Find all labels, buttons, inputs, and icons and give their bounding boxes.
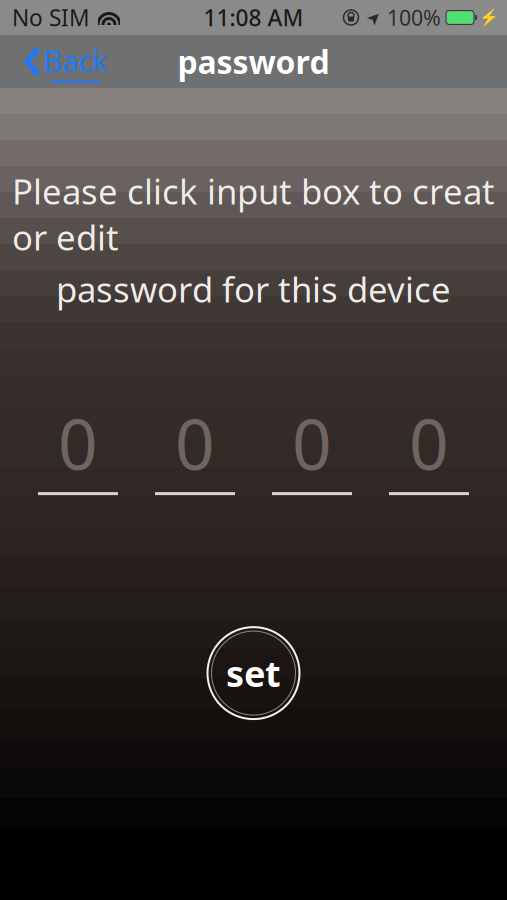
staticText: password — [177, 40, 329, 83]
staticText: Back — [43, 40, 108, 79]
button[interactable]: 0 — [262, 412, 362, 495]
staticText: 0 — [409, 397, 449, 489]
staticText: Please click input box to creat or edit — [12, 168, 495, 260]
button[interactable]: set — [203, 623, 303, 723]
staticText: 100% — [387, 3, 441, 32]
staticText: 0 — [292, 397, 332, 489]
button[interactable]: 0 — [379, 412, 479, 495]
button[interactable]: Back — [18, 32, 114, 90]
staticText: ➤ — [366, 8, 381, 27]
staticText: ⚡ — [479, 8, 499, 27]
staticText: 0 — [175, 397, 215, 489]
button[interactable]: 0 — [28, 412, 128, 495]
staticText: set — [226, 649, 281, 697]
staticText: 0 — [58, 397, 98, 489]
button[interactable]: 0 — [145, 412, 245, 495]
staticText: No SIM — [12, 2, 90, 32]
staticText: password for this device — [56, 266, 451, 312]
staticText: 11:08 AM — [203, 2, 303, 32]
